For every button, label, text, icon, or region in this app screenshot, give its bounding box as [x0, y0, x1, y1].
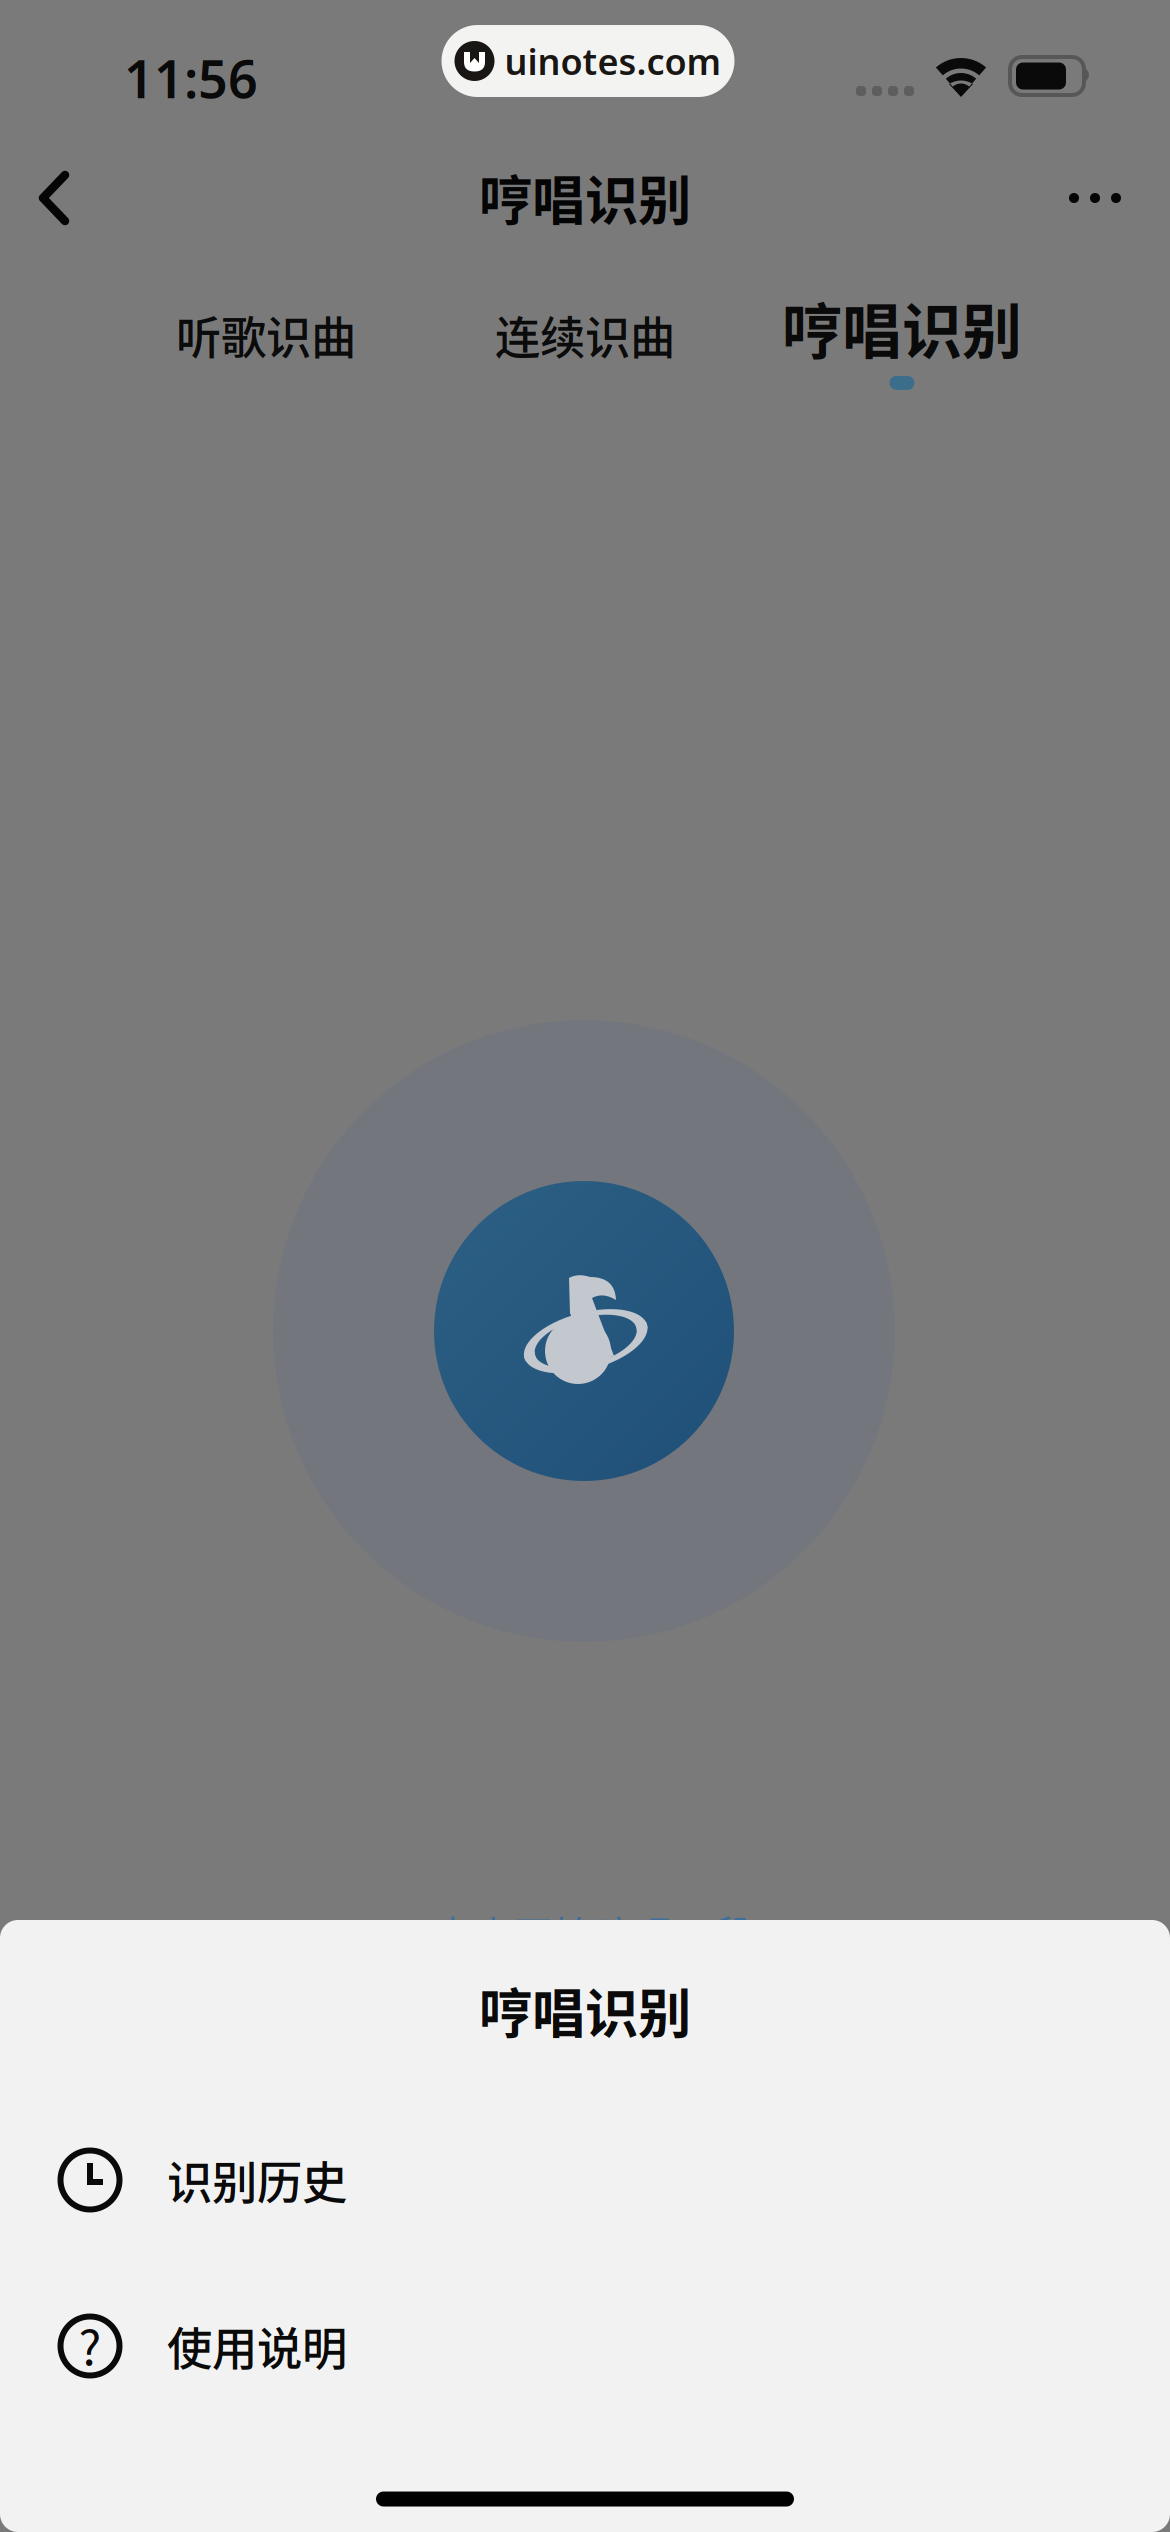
staticText: uinotes.com [504, 37, 721, 85]
staticText: 使用说明 [167, 2313, 347, 2379]
staticText: 11:56 [124, 43, 258, 113]
staticText: 哼唱识别 [479, 158, 691, 236]
button[interactable]: 识别历史 [0, 2110, 1170, 2250]
staticText: 连续识曲 [495, 302, 675, 368]
button[interactable]: More options [1033, 136, 1157, 260]
staticText: ? [78, 2309, 101, 2379]
staticText: 哼唱识别 [782, 284, 1022, 371]
button[interactable]: Back [0, 136, 124, 260]
button[interactable]: 连续识曲 [461, 276, 709, 394]
button[interactable]: Start humming recognition [273, 1020, 895, 1642]
staticText: 哼唱识别 [479, 1971, 691, 2049]
button[interactable]: 哼唱识别 [756, 268, 1048, 406]
button[interactable]: 听歌识曲 [142, 276, 390, 394]
staticText: 识别历史 [167, 2147, 347, 2213]
staticText: 听歌识曲 [176, 302, 356, 368]
staticText: 点击开始哼唱一段 [433, 1904, 753, 1962]
button[interactable]: ? [0, 2276, 1170, 2416]
